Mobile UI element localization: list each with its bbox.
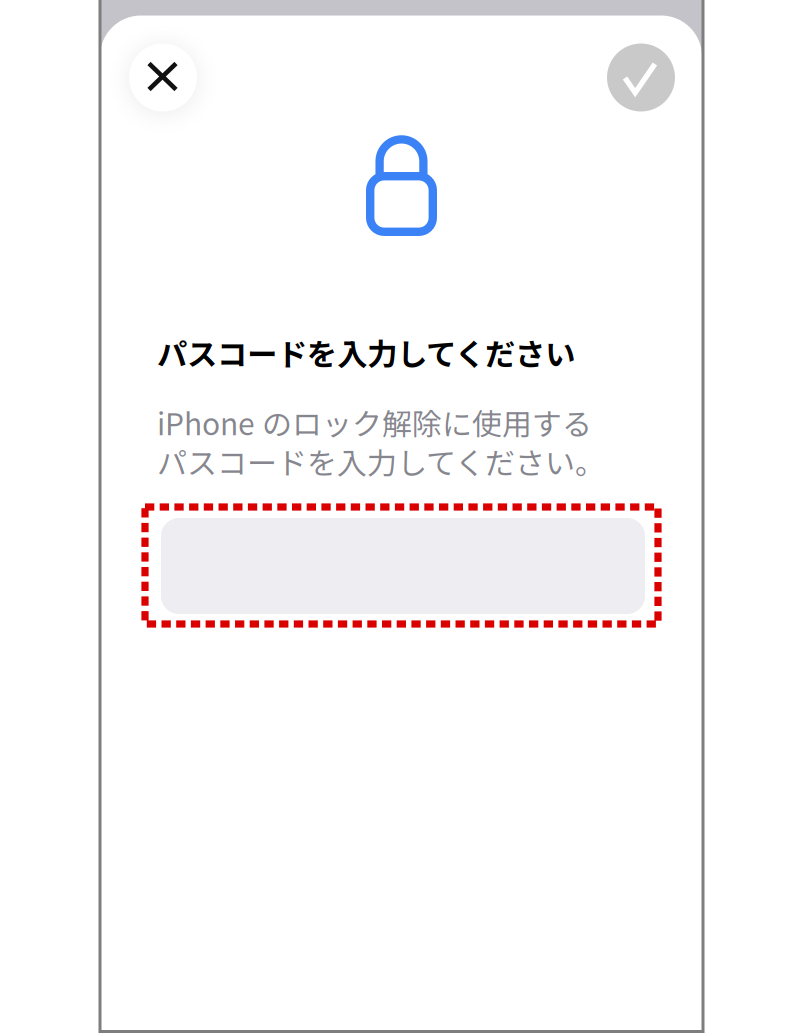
button[interactable]: Passcode entry field bbox=[139, 499, 658, 621]
button[interactable]: Close bbox=[126, 40, 200, 114]
staticText: パスコードを入力してください bbox=[157, 330, 575, 374]
staticText: パスコードを入力してください。 bbox=[157, 439, 605, 483]
button[interactable]: Done bbox=[604, 40, 678, 114]
staticText: iPhone のロック解除に使用する bbox=[157, 400, 592, 444]
